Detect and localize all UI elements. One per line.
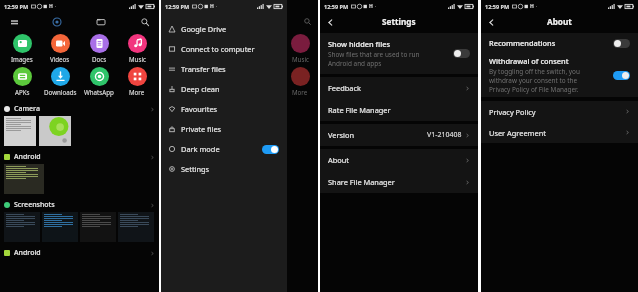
button[interactable]: Android — [0, 246, 159, 260]
button[interactable]: User Agreement — [481, 122, 638, 143]
staticText: Videos — [50, 55, 70, 63]
staticText: APKs — [15, 88, 30, 96]
staticText: Docs — [92, 55, 107, 63]
button[interactable]: Images — [4, 34, 40, 63]
staticText: Images — [11, 55, 33, 63]
staticText: Android — [14, 152, 41, 162]
button[interactable]: Docs — [81, 34, 117, 63]
button[interactable]: Private files — [161, 119, 287, 139]
button[interactable]: About — [320, 149, 478, 171]
button[interactable]: Android — [0, 150, 159, 164]
button[interactable]: Transfer files — [161, 59, 287, 79]
button[interactable]: Favourites — [161, 99, 287, 119]
staticText: Connect to computer — [181, 44, 255, 54]
button[interactable]: Recommendations — [481, 33, 638, 53]
button[interactable]: APKs — [4, 67, 40, 96]
staticText: Transfer files — [181, 64, 226, 74]
button[interactable]: Settings — [161, 159, 287, 179]
staticText: Favourites — [181, 104, 218, 114]
button[interactable]: Toggle — [453, 49, 470, 58]
staticText: H — [210, 3, 214, 10]
staticText: Show files that are used to run Android … — [328, 50, 420, 68]
staticText: Private files — [181, 124, 222, 134]
button[interactable]: Toggle — [613, 71, 630, 80]
button[interactable]: Toggle — [613, 39, 630, 48]
button[interactable]: Screenshots — [0, 198, 159, 212]
button[interactable]: Menu — [7, 15, 21, 29]
button[interactable]: Share File Manager — [320, 171, 478, 193]
staticText: Rate File Manager — [328, 105, 391, 115]
staticText: Music — [129, 55, 146, 63]
button[interactable]: Deep clean — [161, 79, 287, 99]
staticText: More — [129, 88, 145, 96]
staticText: Music — [292, 55, 309, 63]
staticText: · — [536, 3, 538, 10]
staticText: H — [530, 3, 534, 10]
button[interactable]: Back — [325, 14, 336, 30]
button[interactable]: Version — [320, 124, 478, 146]
button[interactable]: Music — [119, 34, 155, 63]
staticText: More — [292, 88, 308, 96]
button[interactable]: Withdrawal of consent — [481, 53, 638, 97]
button[interactable]: Clean — [50, 15, 64, 29]
staticText: Camera — [14, 104, 40, 114]
staticText: · — [375, 3, 377, 10]
button[interactable]: Feedback — [320, 77, 478, 99]
staticText: User Agreement — [489, 128, 546, 138]
staticText: Settings — [382, 16, 416, 27]
staticText: Share File Manager — [328, 177, 395, 187]
staticText: Deep clean — [181, 84, 220, 94]
button[interactable] — [262, 145, 279, 154]
button[interactable]: Downloads — [42, 67, 78, 96]
staticText: Withdrawal of consent — [489, 56, 569, 66]
button[interactable]: Videos — [42, 34, 78, 63]
staticText: H — [49, 3, 53, 10]
button[interactable]: Camera — [0, 102, 159, 116]
button[interactable]: More — [119, 67, 155, 96]
button[interactable]: Search — [138, 15, 152, 29]
button[interactable]: Back — [486, 14, 497, 30]
staticText: Dark mode — [181, 144, 220, 154]
staticText: Settings — [181, 164, 210, 174]
button[interactable]: Connect to computer — [161, 39, 287, 59]
staticText: About — [328, 155, 349, 165]
staticText: By toggling off the switch, you withdraw… — [489, 67, 580, 94]
staticText: 12:59 PM — [4, 3, 29, 10]
staticText: · — [55, 3, 57, 10]
staticText: Google Drive — [181, 24, 227, 34]
button[interactable]: Show hidden files — [320, 37, 478, 70]
staticText: Screenshots — [14, 200, 55, 210]
staticText: Feedback — [328, 83, 361, 93]
button[interactable]: WhatsApp — [81, 67, 117, 96]
button[interactable]: Privacy Policy — [481, 101, 638, 122]
button[interactable]: Folders — [94, 15, 108, 29]
staticText: 12:59 PM — [485, 3, 510, 10]
staticText: 12:59 PM — [165, 3, 190, 10]
staticText: Android — [14, 248, 41, 258]
button[interactable]: Dark mode — [161, 139, 287, 159]
staticText: Downloads — [44, 88, 77, 96]
staticText: · — [216, 3, 218, 10]
staticText: H — [369, 3, 373, 10]
staticText: Version — [328, 130, 354, 140]
staticText: Privacy Policy — [489, 107, 536, 117]
button[interactable]: Rate File Manager — [320, 99, 478, 121]
staticText: About — [547, 16, 572, 27]
staticText: 12:59 PM — [324, 3, 349, 10]
staticText: Show hidden files — [328, 39, 391, 49]
button[interactable]: Google Drive — [161, 19, 287, 39]
staticText: Recommendations — [489, 38, 556, 48]
staticText: V1-210408 — [427, 130, 462, 140]
staticText: WhatsApp — [84, 88, 114, 96]
